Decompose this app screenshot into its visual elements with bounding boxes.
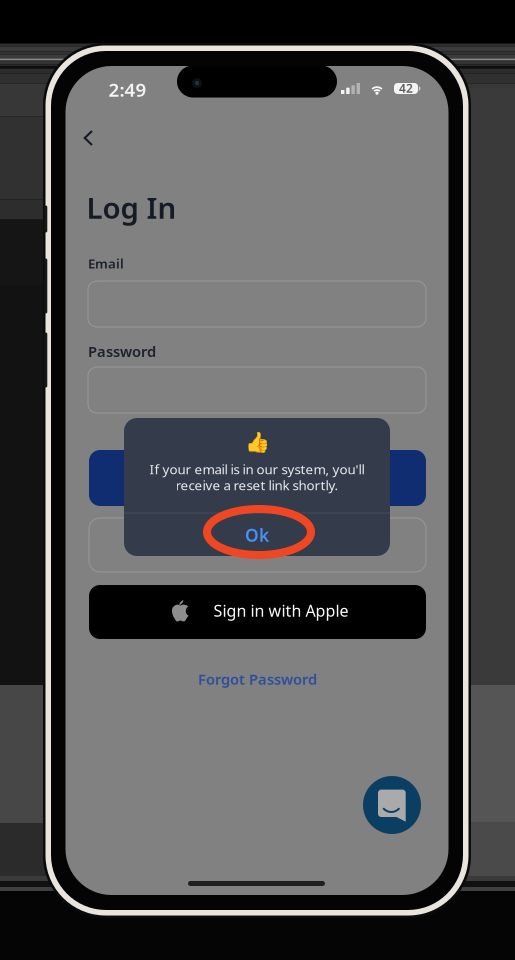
staticText: 42	[399, 80, 413, 96]
button[interactable]: Ok	[124, 513, 390, 556]
button[interactable]	[89, 518, 426, 572]
staticText: 2:49	[109, 77, 147, 102]
button[interactable]	[89, 450, 426, 506]
staticText: receive a reset link shortly.	[175, 476, 338, 494]
staticText: If your email is in our system, you'll	[149, 460, 364, 478]
button[interactable]: Forgot Password	[89, 666, 426, 692]
button[interactable]: Back	[71, 118, 105, 158]
staticText: Log In	[86, 188, 176, 227]
staticText: Password	[88, 341, 156, 361]
staticText: Email	[88, 254, 124, 272]
button[interactable]: Sign in with Apple	[89, 585, 426, 639]
staticText: Sign in with Apple	[213, 600, 348, 621]
button[interactable]: Chat	[363, 776, 421, 834]
staticText: 👍	[244, 431, 269, 453]
staticText: Forgot Password	[198, 669, 317, 689]
staticText: Ok	[245, 523, 269, 546]
